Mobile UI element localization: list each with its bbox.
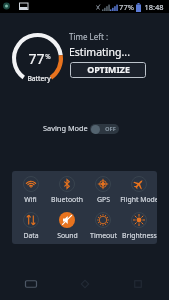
- staticText: OPTIMIZE: [87, 64, 130, 76]
- staticText: 77%: [119, 2, 134, 12]
- button[interactable]: Recent apps: [9, 268, 53, 300]
- button[interactable]: Data: [12, 207, 49, 243]
- button[interactable]: Brightness: [121, 207, 157, 243]
- staticText: Battery: [27, 74, 51, 83]
- button[interactable]: Saving Mode toggle: [90, 124, 119, 134]
- staticText: OFF: [105, 125, 116, 133]
- staticText: Wifi: [24, 195, 37, 204]
- staticText: GPS: [97, 195, 110, 204]
- staticText: 18:48: [144, 2, 164, 12]
- staticText: Flight Mode: [120, 195, 157, 204]
- staticText: Bluetooth: [51, 195, 83, 204]
- button[interactable]: Bluetooth: [49, 171, 85, 207]
- staticText: Time Left :: [69, 31, 109, 42]
- button[interactable]: Flight Mode: [121, 171, 157, 207]
- staticText: Sound: [57, 231, 78, 240]
- button[interactable]: GPS: [85, 171, 121, 207]
- staticText: %: [45, 52, 51, 61]
- staticText: Estimating...: [69, 45, 130, 59]
- staticText: 77: [28, 49, 45, 68]
- staticText: Brightness: [122, 231, 157, 240]
- button[interactable]: Wifi: [12, 171, 49, 207]
- staticText: Saving Mode: [43, 123, 88, 133]
- button[interactable]: Sound: [49, 207, 85, 243]
- staticText: Timeout: [90, 231, 117, 240]
- button[interactable]: OPTIMIZE: [70, 62, 146, 78]
- button[interactable]: Timeout: [85, 207, 121, 243]
- staticText: Data: [23, 231, 39, 240]
